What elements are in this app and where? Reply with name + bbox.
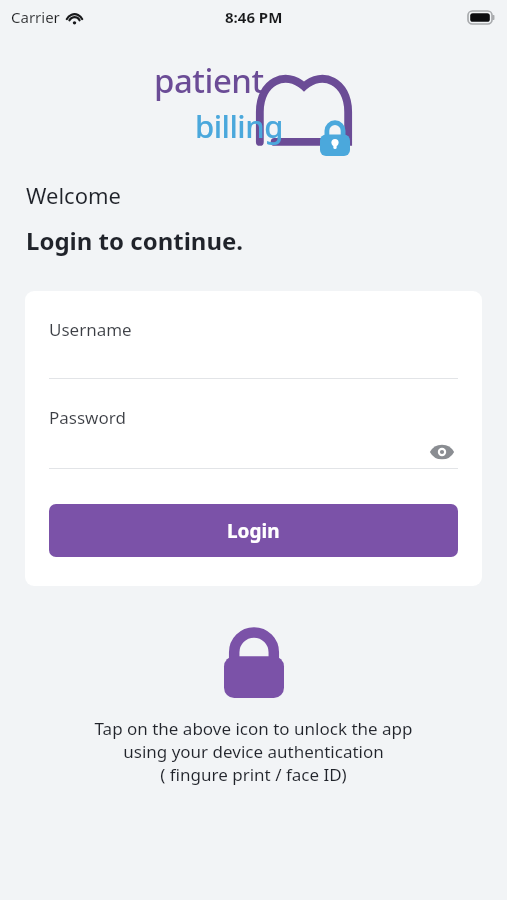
staticText: 8:46 PM bbox=[225, 7, 283, 27]
staticText: patient bbox=[154, 58, 264, 103]
button[interactable]: Show password bbox=[426, 436, 458, 468]
staticText: Username bbox=[49, 318, 132, 341]
button[interactable]: Username bbox=[49, 318, 458, 378]
staticText: Login bbox=[227, 518, 280, 544]
staticText: Carrier bbox=[11, 7, 60, 27]
staticText: billing bbox=[195, 105, 283, 147]
button[interactable]: Password bbox=[49, 406, 458, 468]
button[interactable]: Login bbox=[49, 504, 458, 557]
staticText: Login to continue. bbox=[26, 224, 244, 257]
staticText: Tap on the above icon to unlock the app … bbox=[20, 717, 487, 786]
staticText: Welcome bbox=[26, 180, 121, 210]
button[interactable]: Unlock with device authentication bbox=[217, 623, 291, 701]
staticText: Password bbox=[49, 406, 126, 429]
